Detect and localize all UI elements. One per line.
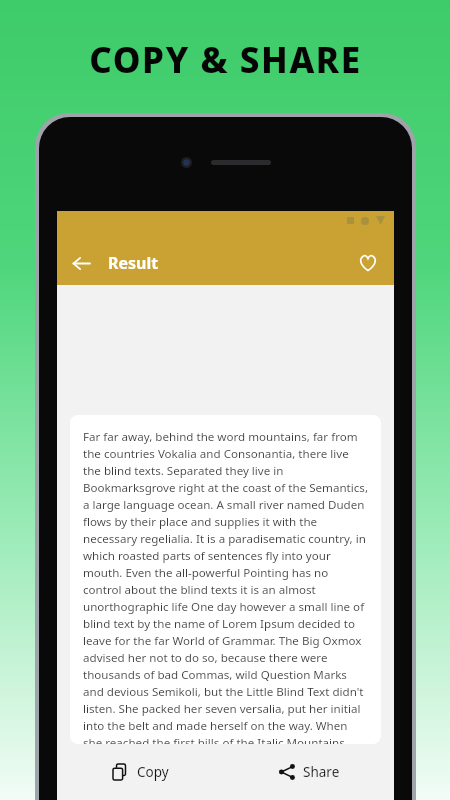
button[interactable]: Copy (57, 744, 225, 800)
staticText: Share (303, 763, 340, 781)
button[interactable]: Share (225, 744, 394, 800)
button[interactable]: Back (63, 245, 99, 281)
staticText: COPY & SHARE (89, 36, 362, 84)
button[interactable]: Favorite (350, 245, 386, 281)
staticText: Far far away, behind the word mountains,… (83, 429, 369, 744)
staticText: Copy (137, 763, 169, 781)
staticText: Result (108, 252, 159, 274)
